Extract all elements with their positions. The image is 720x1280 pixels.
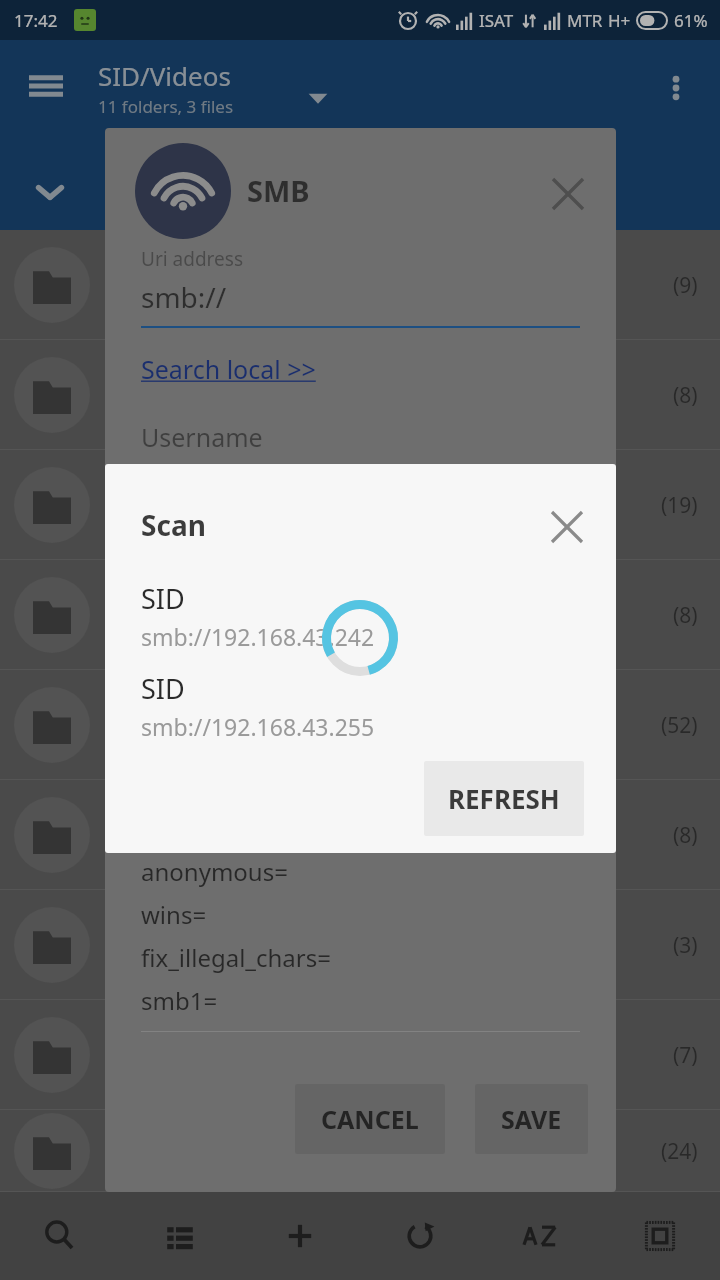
staticText: H+ xyxy=(608,9,631,32)
button[interactable]: Add xyxy=(240,1192,360,1280)
button[interactable]: More options xyxy=(654,66,698,110)
staticText: Username xyxy=(141,420,263,454)
button[interactable]: List view xyxy=(120,1192,240,1280)
button[interactable]: (8) xyxy=(0,560,720,670)
staticText: ISAT xyxy=(479,9,514,32)
staticText: (19) xyxy=(661,491,698,520)
staticText: smb:// xyxy=(141,278,227,316)
staticText: Scan xyxy=(141,506,206,544)
button[interactable]: Select all xyxy=(600,1192,720,1280)
button[interactable]: Collapse xyxy=(28,170,72,214)
staticText: REFRESH xyxy=(448,781,560,816)
button[interactable]: CANCEL xyxy=(295,1084,445,1154)
button[interactable]: Search local >> xyxy=(141,352,316,386)
staticText: SID/Videos xyxy=(98,58,231,93)
staticText: CANCEL xyxy=(321,1102,419,1136)
staticText: SAVE xyxy=(501,1102,562,1136)
staticText: (8) xyxy=(673,601,698,630)
staticText: (9) xyxy=(673,271,698,300)
button[interactable]: SID xyxy=(141,580,375,652)
button[interactable]: (24) xyxy=(0,1110,720,1192)
button[interactable]: Sort xyxy=(480,1192,600,1280)
staticText: smb1= xyxy=(141,984,218,1017)
staticText: SID xyxy=(141,670,185,707)
staticText: anonymous= xyxy=(141,855,288,888)
button[interactable]: (8) xyxy=(0,340,720,450)
staticText: (52) xyxy=(661,711,698,740)
staticText: smb://192.168.43.255 xyxy=(141,711,375,742)
staticText: Search local >> xyxy=(141,352,316,386)
button[interactable]: (3) xyxy=(0,890,720,1000)
button[interactable]: SID xyxy=(141,670,375,742)
staticText: 61% xyxy=(674,9,708,32)
button[interactable]: (7) xyxy=(0,1000,720,1110)
staticText: (24) xyxy=(661,1137,698,1166)
button[interactable]: Search xyxy=(0,1192,120,1280)
staticText: SID xyxy=(141,580,185,617)
staticText: Uri address xyxy=(141,246,243,272)
button[interactable]: (19) xyxy=(0,450,720,560)
staticText: fix_illegal_chars= xyxy=(141,941,331,974)
staticText: 17:42 xyxy=(14,9,58,32)
button[interactable]: SAVE xyxy=(475,1084,588,1154)
staticText: (8) xyxy=(673,381,698,410)
staticText: SMB xyxy=(247,171,310,210)
staticText: (8) xyxy=(673,821,698,850)
button[interactable]: Menu xyxy=(22,62,70,110)
button[interactable]: (9) xyxy=(0,230,720,340)
staticText: 11 folders, 3 files xyxy=(98,95,234,118)
button[interactable]: Refresh xyxy=(360,1192,480,1280)
staticText: wins= xyxy=(141,898,207,931)
button[interactable]: Close xyxy=(544,504,590,550)
button[interactable]: Close xyxy=(546,172,590,216)
staticText: (3) xyxy=(673,931,698,960)
button[interactable]: (52) xyxy=(0,670,720,780)
staticText: smb://192.168.43.242 xyxy=(141,621,375,652)
button[interactable]: (8) xyxy=(0,780,720,890)
staticText: MTR xyxy=(567,9,603,32)
staticText: (7) xyxy=(673,1041,698,1070)
button[interactable]: Expand xyxy=(300,80,336,116)
button[interactable]: REFRESH xyxy=(424,761,584,836)
